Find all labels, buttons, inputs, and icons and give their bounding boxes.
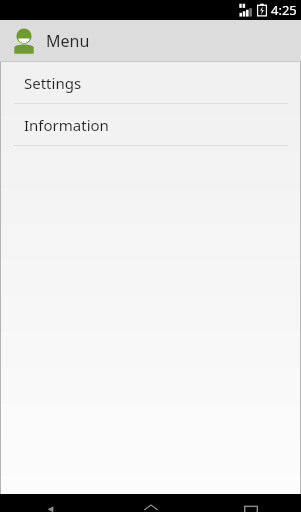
button[interactable]: Recent apps	[201, 494, 301, 512]
staticText: Settings	[24, 73, 82, 93]
staticText: Information	[24, 115, 109, 135]
button[interactable]: Back	[0, 494, 101, 512]
button[interactable]: Information	[0, 104, 301, 145]
button[interactable]: Settings	[0, 62, 301, 103]
staticText: 4:25	[271, 1, 297, 19]
button[interactable]: Home	[101, 494, 201, 512]
staticText: Menu	[46, 30, 90, 52]
